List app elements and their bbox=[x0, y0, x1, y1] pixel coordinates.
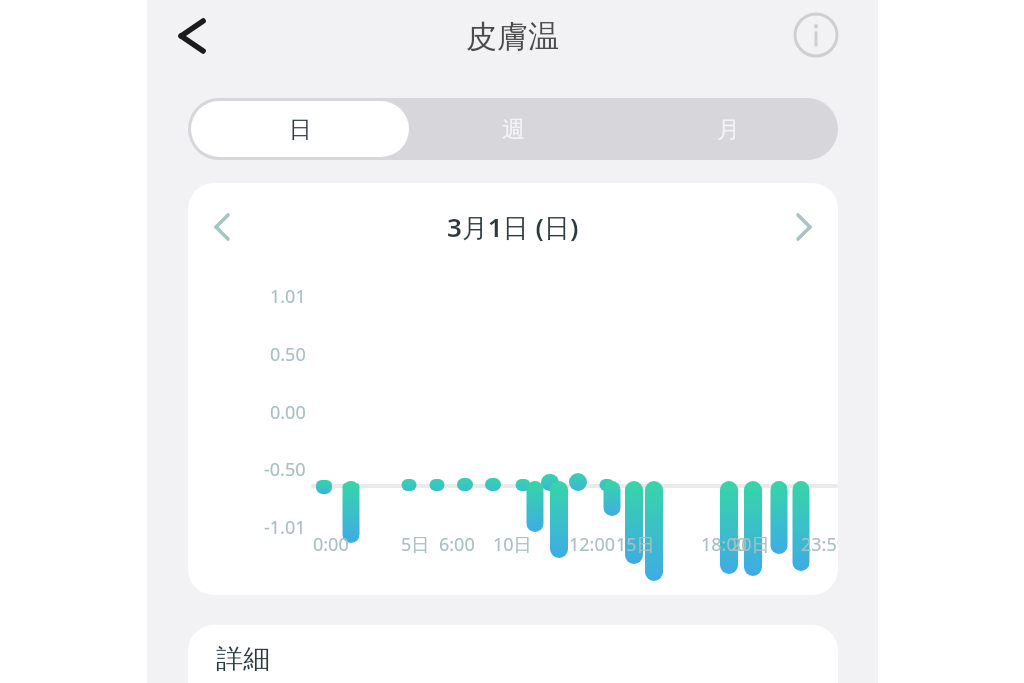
staticText: 詳細 bbox=[216, 642, 270, 676]
staticText: 15日 bbox=[616, 532, 655, 557]
staticText: 0.00 bbox=[270, 400, 306, 425]
staticText: 3月1日 (日) bbox=[447, 209, 579, 245]
staticText: 皮膚温 bbox=[466, 17, 559, 56]
staticText: 0.50 bbox=[270, 342, 306, 367]
staticText: 10日 bbox=[493, 532, 532, 557]
button[interactable]: Next day bbox=[778, 201, 830, 253]
staticText: 5日 bbox=[401, 532, 430, 557]
staticText: 6:00 bbox=[439, 532, 475, 557]
staticText: -0.50 bbox=[264, 457, 306, 482]
staticText: 1.01 bbox=[270, 284, 306, 309]
button[interactable]: Information bbox=[788, 7, 844, 63]
staticText: 12:00 bbox=[569, 532, 616, 557]
staticText: 23:59 bbox=[801, 532, 838, 557]
button[interactable]: 週 bbox=[406, 101, 621, 157]
staticText: 日 bbox=[289, 115, 312, 144]
staticText: -1.01 bbox=[264, 515, 306, 540]
staticText: 月 bbox=[717, 115, 740, 144]
staticText: 週 bbox=[502, 115, 525, 144]
staticText: 0:00 bbox=[313, 532, 349, 557]
button[interactable]: Back bbox=[163, 8, 219, 64]
staticText: 20日 bbox=[731, 532, 770, 557]
staticText: 18:00 bbox=[701, 532, 748, 557]
button[interactable]: 詳細 bbox=[188, 625, 838, 683]
button[interactable]: 月 bbox=[621, 101, 836, 157]
button[interactable]: Previous day bbox=[196, 201, 248, 253]
button[interactable]: 日 bbox=[191, 101, 409, 157]
